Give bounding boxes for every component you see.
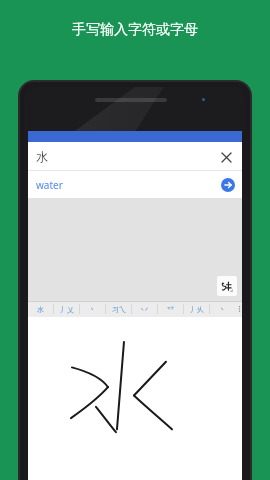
staticText: 习乀 <box>112 305 126 314</box>
button[interactable]: Handwriting input <box>217 276 237 296</box>
button[interactable]: 丿乂 <box>54 301 79 317</box>
other: Go <box>220 177 236 193</box>
button[interactable]: 水 <box>28 301 53 317</box>
button[interactable]: Handwriting area <box>28 317 242 480</box>
staticText: 丿乆 <box>190 305 204 314</box>
button[interactable]: 丶 <box>210 301 235 317</box>
button[interactable]: 乊 <box>158 301 183 317</box>
staticText: 乊 <box>167 305 174 314</box>
button[interactable]: 丿乆 <box>184 301 209 317</box>
button[interactable]: 丶 <box>80 301 105 317</box>
staticText: 丿乂 <box>60 305 74 314</box>
staticText: 水 <box>37 305 44 314</box>
button[interactable]: 丷 <box>132 301 157 317</box>
staticText: 丷 <box>141 305 148 314</box>
button[interactable]: More candidates <box>237 301 242 317</box>
staticText: 手写输入字符或字母 <box>72 21 198 39</box>
staticText: 水 <box>36 149 48 164</box>
button[interactable]: 习乀 <box>106 301 131 317</box>
button[interactable]: Clear <box>216 147 236 167</box>
staticText: 丶 <box>219 305 226 314</box>
staticText: 丶 <box>89 305 96 314</box>
staticText: water <box>36 178 63 192</box>
button[interactable]: water <box>28 171 242 198</box>
